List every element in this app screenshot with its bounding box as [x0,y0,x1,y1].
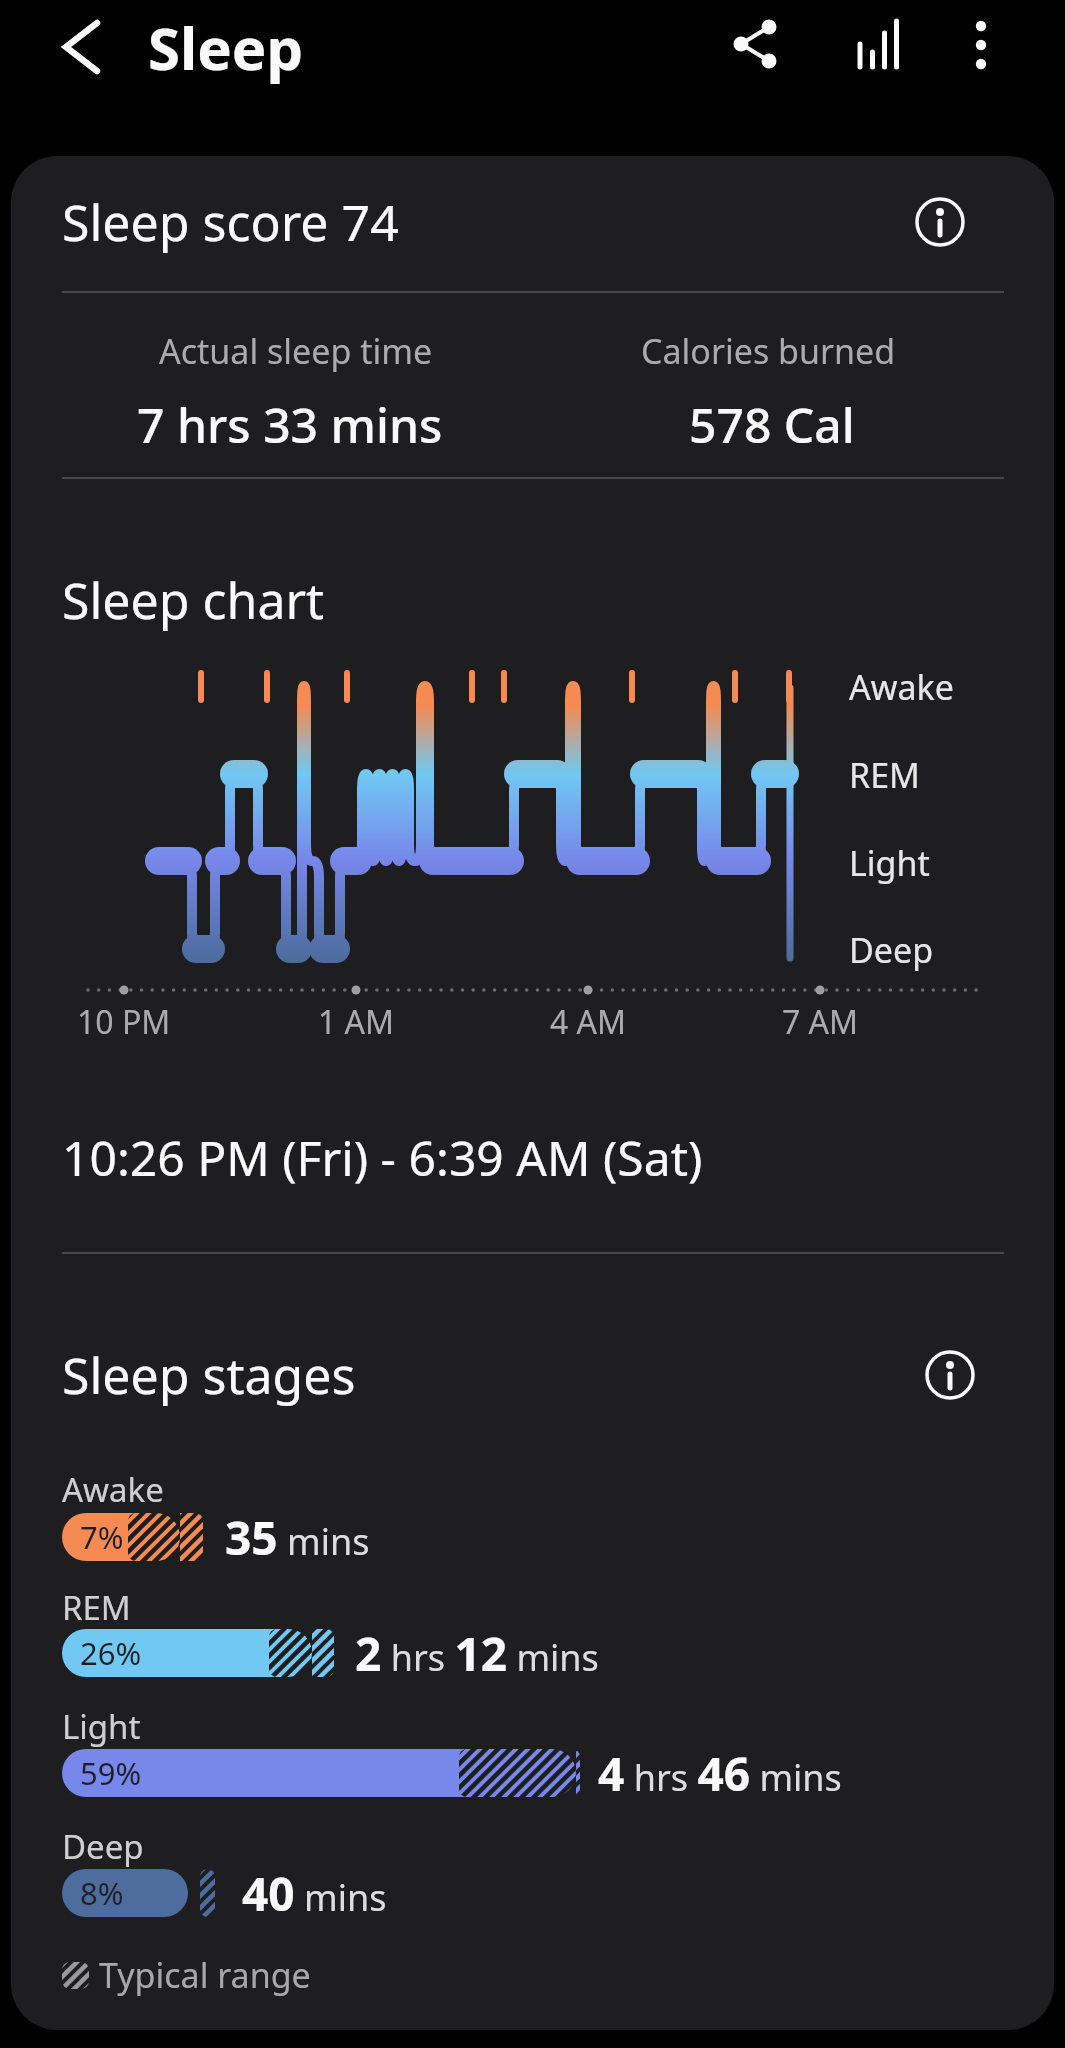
staticText: Sleep chart [62,566,325,634]
staticText: 2 hrs 12 mins [355,1622,599,1685]
staticText: Deep [849,927,934,973]
staticText: 40 mins [242,1862,387,1925]
staticText: Light [849,840,930,886]
button[interactable] [915,1340,985,1410]
button[interactable] [946,9,1018,81]
staticText: Sleep score 74 [62,188,399,256]
staticText: 4 hrs 46 mins [598,1742,842,1805]
staticText: 26% [80,1632,142,1674]
staticText: 7% [80,1516,124,1558]
staticText: 10 PM [77,1000,171,1044]
staticText: 10:26 PM (Fri) - 6:39 AM (Sat) [62,1125,703,1190]
staticText: Awake [849,664,954,710]
staticText: 1 AM [318,1000,395,1044]
button[interactable] [905,187,975,257]
button[interactable] [45,12,115,82]
staticText: 578 Cal [689,392,855,457]
staticText: Sleep stages [62,1341,356,1409]
staticText: 7 AM [782,1000,859,1044]
staticText: 7 hrs 33 mins [137,392,443,457]
staticText: Deep [62,1824,144,1869]
staticText: Sleep [148,8,304,87]
staticText: 59% [80,1752,142,1794]
staticText: Light [62,1704,141,1749]
staticText: Awake [62,1467,164,1512]
staticText: 8% [80,1872,124,1914]
staticText: Calories burned [641,328,896,374]
staticText: Typical range [99,1952,311,1998]
staticText: 4 AM [550,1000,627,1044]
staticText: 35 mins [225,1506,370,1569]
button[interactable] [720,9,792,81]
staticText: REM [62,1585,131,1630]
button[interactable] [842,9,914,81]
staticText: Actual sleep time [159,328,433,374]
staticText: REM [849,752,920,798]
